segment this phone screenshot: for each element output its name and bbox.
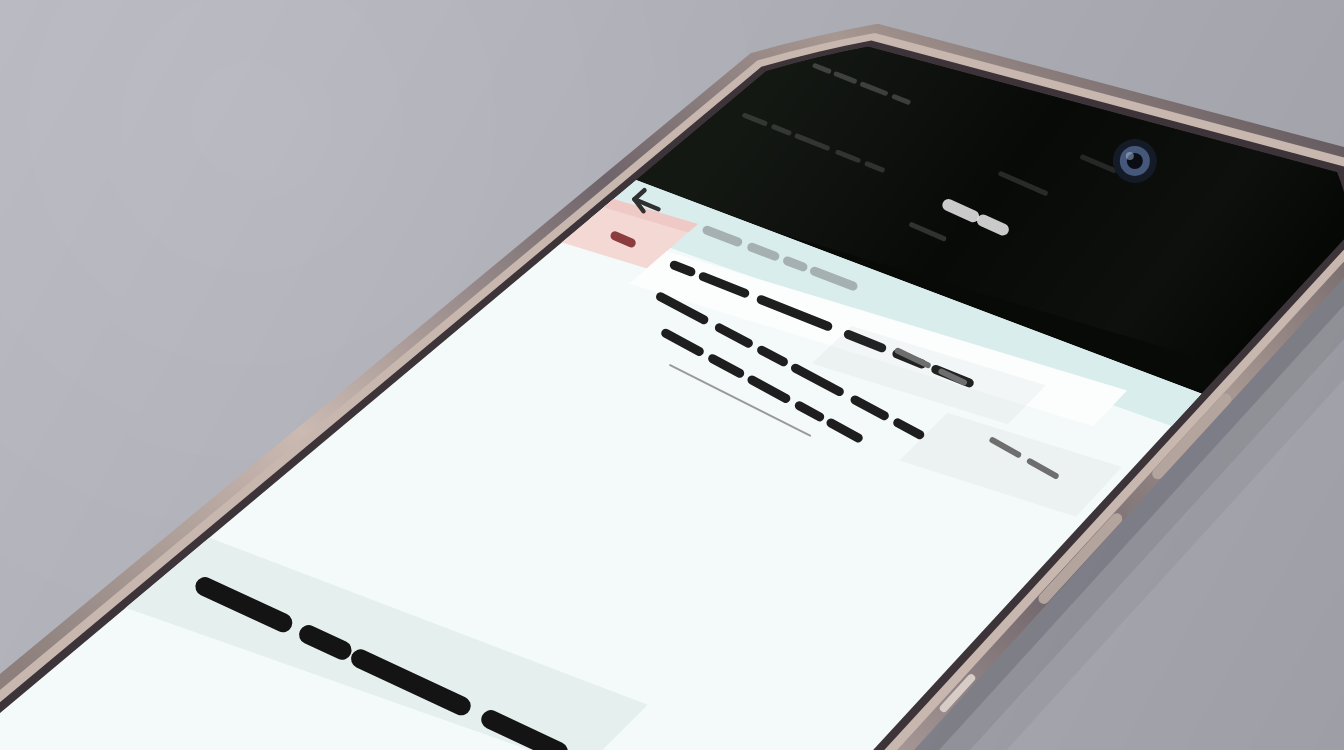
button[interactable]: Phone on a desk showing an app screen <box>0 0 1344 750</box>
